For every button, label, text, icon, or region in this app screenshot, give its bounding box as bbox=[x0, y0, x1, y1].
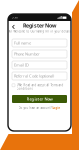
staticText: Referral Code (optional) bbox=[14, 73, 54, 79]
button[interactable]: Do you have an account? bbox=[8, 106, 71, 110]
staticText: Register Now bbox=[26, 96, 52, 102]
staticText: An Welcome to Our Family! Fill in your d… bbox=[8, 30, 70, 33]
staticText: Email ID bbox=[14, 62, 29, 68]
staticText: Register Now bbox=[23, 22, 56, 29]
staticText: I/We Read and accept all Terms and Condi… bbox=[16, 83, 63, 91]
staticText: Do you have an account? bbox=[19, 106, 52, 110]
button[interactable]: Back bbox=[10, 23, 17, 31]
button[interactable]: Register Now bbox=[12, 95, 67, 103]
staticText: 9:41 bbox=[12, 16, 19, 19]
staticText: Phone Number bbox=[14, 51, 40, 57]
staticText: Full name bbox=[14, 40, 31, 46]
staticText: Login bbox=[52, 106, 60, 110]
